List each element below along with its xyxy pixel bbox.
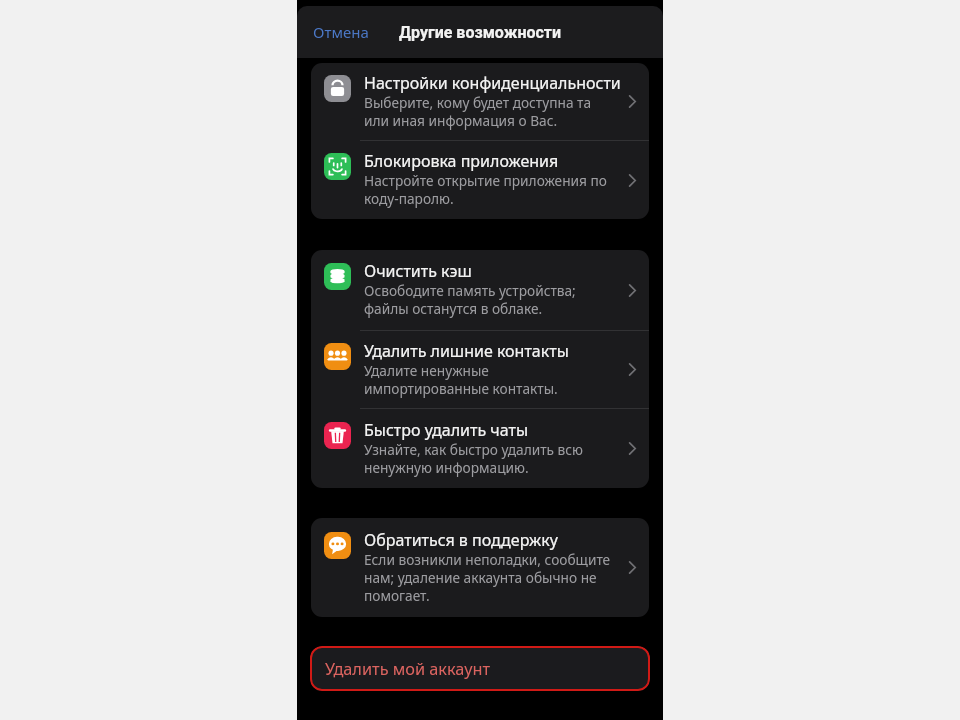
button[interactable]: Быстро удалить чаты [311, 409, 649, 488]
staticText: Быстро удалить чаты [364, 417, 529, 441]
staticText: Настройки конфиденциальности [364, 70, 621, 94]
staticText: Освободите память устройства; файлы оста… [364, 282, 576, 318]
staticText: Блокировка приложения [364, 148, 559, 172]
staticText: Очистить кэш [364, 258, 472, 282]
staticText: Удалите ненужные импортированные контакт… [364, 362, 558, 398]
button[interactable]: Настройки конфиденциальности [311, 63, 649, 140]
staticText: Если возникли неполадки, сообщите нам; у… [364, 551, 611, 605]
staticText: Выберите, кому будет доступна та или ина… [364, 94, 592, 130]
staticText: Узнайте, как быстро удалить всю ненужную… [364, 441, 583, 477]
staticText: Другие возможности [399, 23, 562, 42]
staticText: Обратиться в поддержку [364, 527, 558, 551]
staticText: Удалить мой аккаунт [325, 658, 491, 680]
button[interactable]: Отмена [307, 16, 375, 48]
button[interactable]: Удалить лишние контакты [311, 331, 649, 408]
button[interactable]: Блокировка приложения [311, 141, 649, 219]
button[interactable]: Очистить кэш [311, 250, 649, 330]
staticText: Настройте открытие приложения по коду-па… [364, 172, 607, 208]
button[interactable]: Обратиться в поддержку [311, 518, 649, 617]
button[interactable]: Удалить мой аккаунт [310, 646, 650, 691]
staticText: Отмена [313, 22, 369, 42]
staticText: Удалить лишние контакты [364, 338, 569, 362]
